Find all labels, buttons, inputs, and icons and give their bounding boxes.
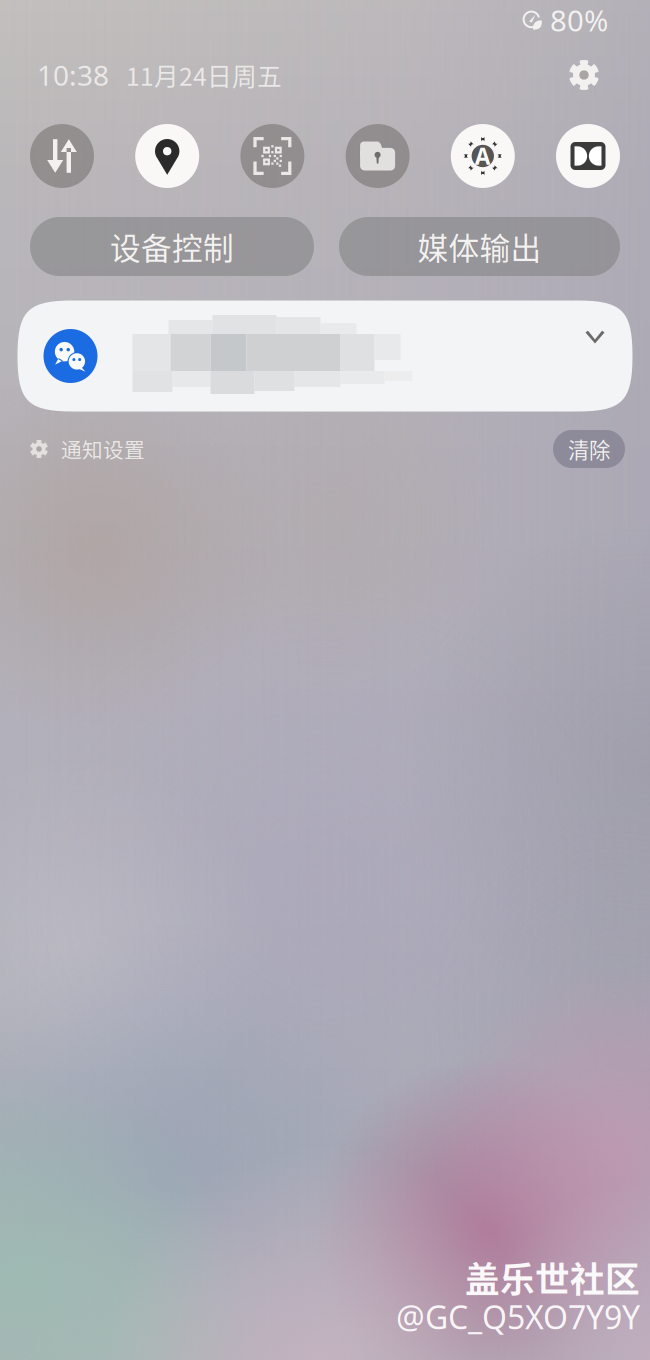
button[interactable]: Secure Folder	[346, 124, 410, 188]
staticText: 盖乐世社区	[465, 1252, 640, 1302]
button[interactable]: Adaptive brightness	[451, 124, 515, 188]
staticText: @GC_Q5XO7Y9Y	[396, 1295, 640, 1338]
staticText: 清除	[568, 434, 610, 464]
button[interactable]: Quick settings	[556, 47, 612, 103]
button[interactable]: 通知设置	[30, 430, 145, 468]
button[interactable]: Location	[135, 124, 199, 188]
button[interactable]: 清除	[553, 430, 625, 468]
button[interactable]: 媒体输出	[339, 217, 620, 276]
button[interactable]: Mobile data	[30, 124, 94, 188]
button[interactable]: 设备控制	[30, 217, 314, 276]
staticText: A	[475, 141, 491, 171]
staticText: 设备控制	[110, 224, 234, 269]
staticText: 媒体输出	[417, 224, 541, 269]
staticText: 11月24日周五	[126, 57, 282, 93]
staticText: 80%	[550, 0, 608, 39]
staticText: 通知设置	[61, 434, 145, 464]
button[interactable]	[17, 300, 632, 411]
button[interactable]: Scan QR code	[240, 124, 304, 188]
button[interactable]: Dolby Atmos	[556, 124, 620, 188]
staticText: 10:38	[37, 56, 109, 94]
